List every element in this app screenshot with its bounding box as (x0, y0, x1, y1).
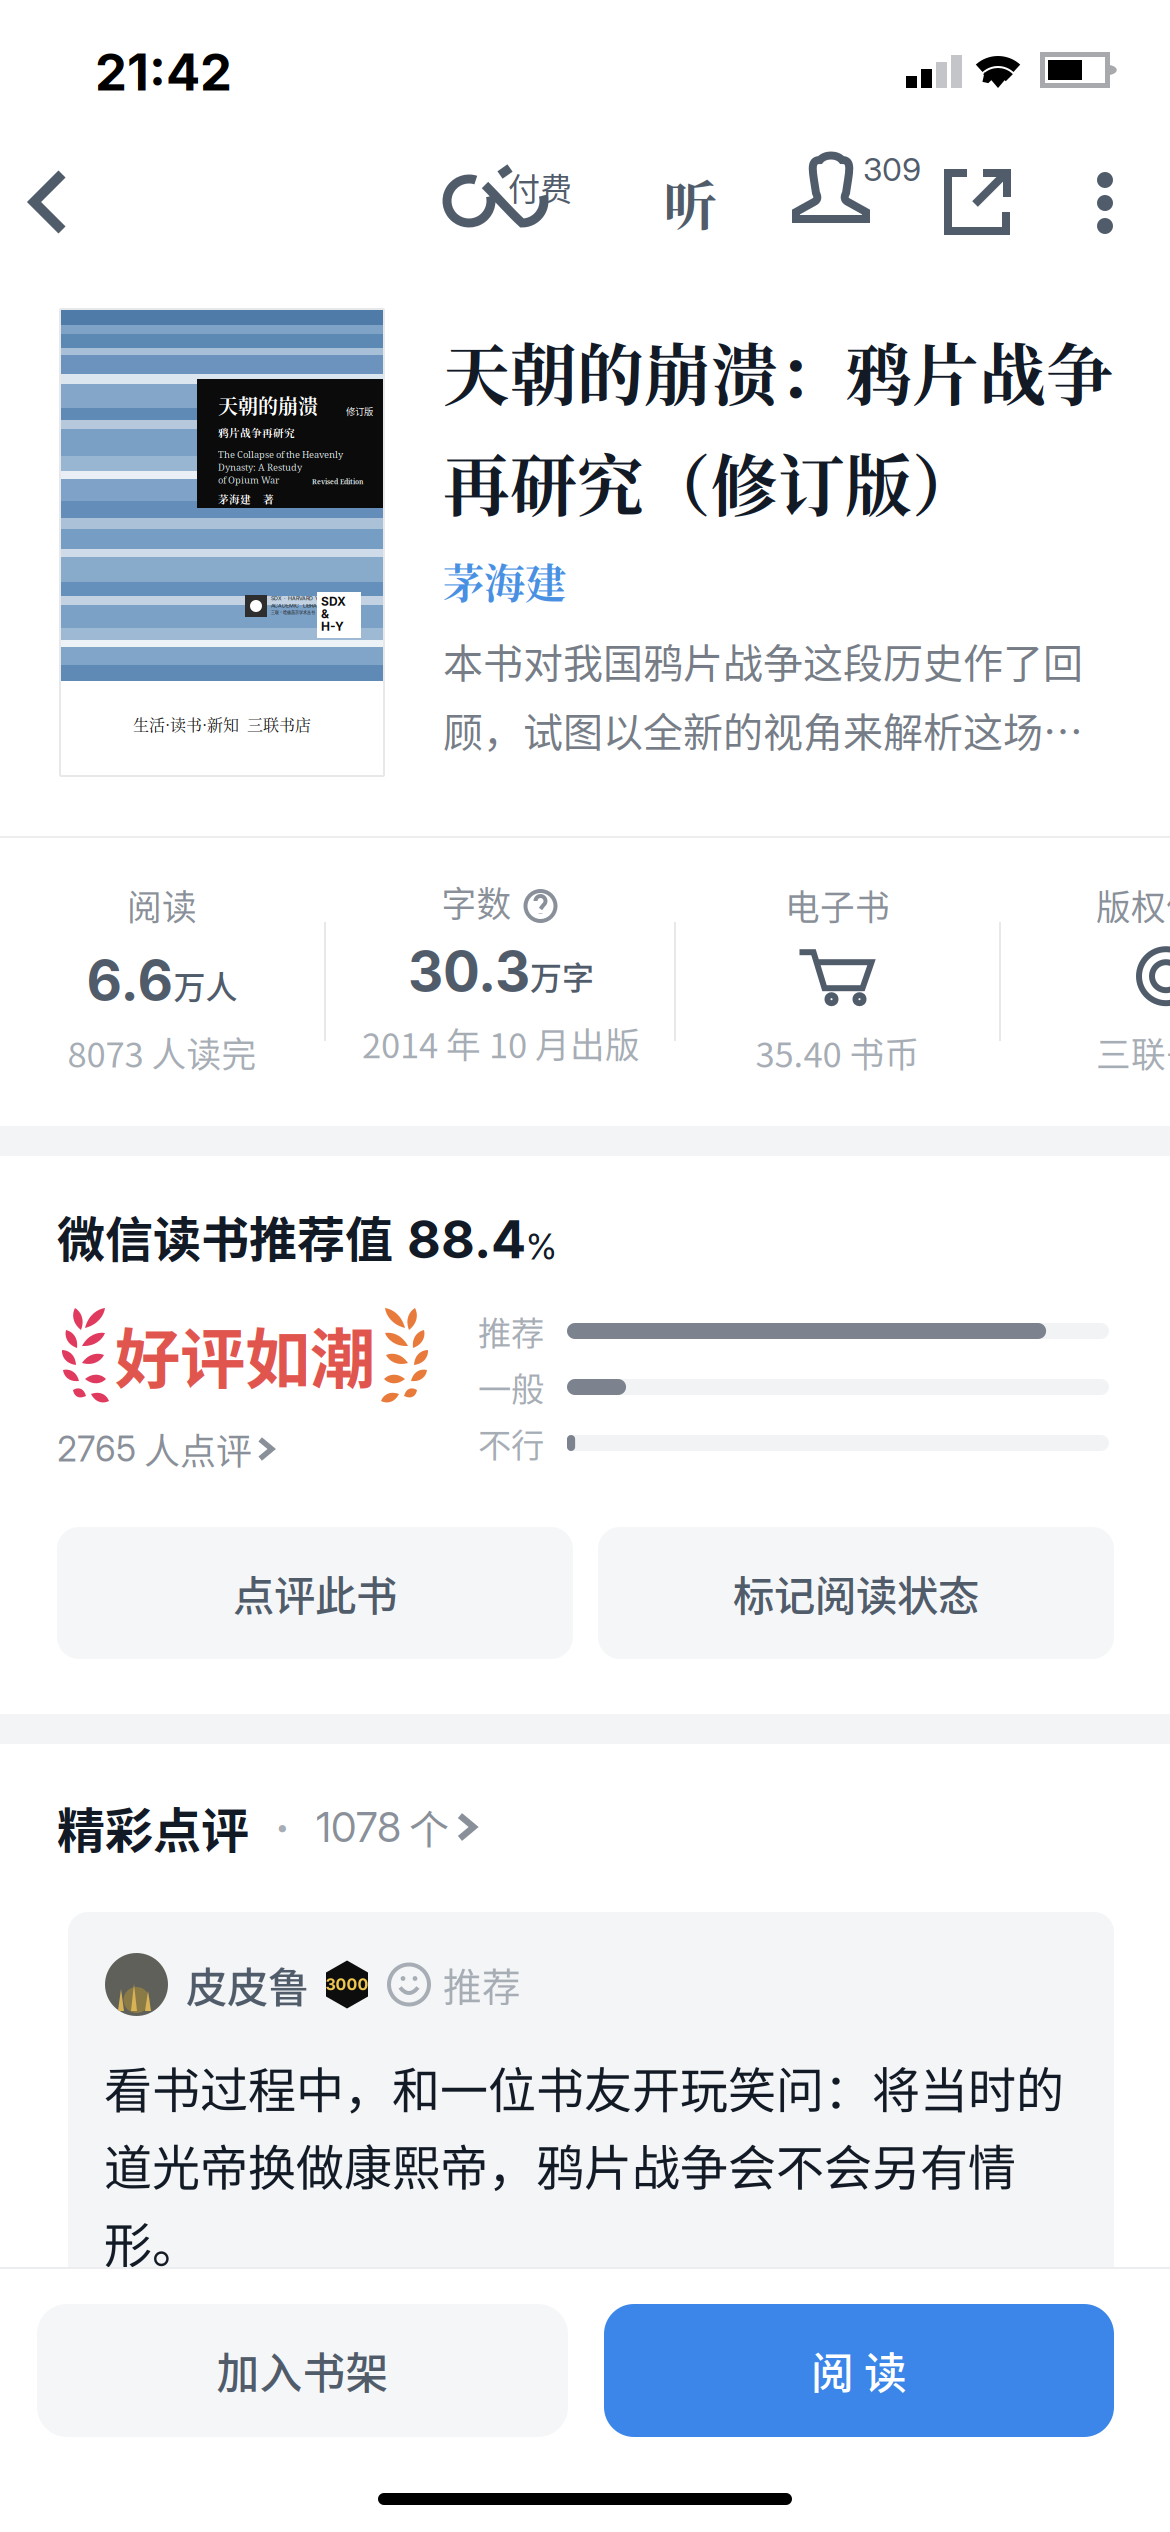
button[interactable]: 点评此书 (57, 1527, 573, 1659)
staticText: 看书过程中，和一位书友开玩笑问：将当时的 (104, 2052, 1064, 2121)
staticText: 人点评 (144, 1423, 252, 1475)
staticText: 电子书 (785, 880, 890, 930)
staticText: 2014 年 10 月出版 (362, 1018, 640, 1068)
staticText: 点评此书 (233, 1563, 397, 1623)
staticText: 88.4 (407, 1208, 526, 1271)
staticText: 35.40 书币 (755, 1027, 919, 1077)
staticText: 万人 (173, 962, 237, 1008)
button[interactable]: 好评如潮 (57, 1300, 457, 1498)
staticText: 天朝的崩溃 (218, 391, 318, 420)
staticText: 阅读 (127, 880, 197, 930)
staticText: 精彩点评 (57, 1792, 249, 1862)
staticText: 3000 (325, 1975, 368, 1994)
staticText: 21:42 (95, 41, 232, 103)
staticText: SDX · HARVARD YENCHING (271, 595, 343, 601)
staticText: 顾，试图以全新的视角来解析这场… (443, 700, 1083, 758)
staticText: 皮皮鲁 (186, 1955, 309, 2014)
staticText: 8073 人读完 (67, 1027, 256, 1077)
staticText: 加入书架 (216, 2340, 388, 2401)
button[interactable]: 听书 (635, 140, 745, 265)
staticText: 标记阅读状态 (733, 1563, 979, 1623)
staticText: 阅 读 (811, 2340, 907, 2401)
button[interactable]: 读者 309 (791, 140, 961, 265)
staticText: 天朝的崩溃：鸦片战争 (443, 323, 1113, 419)
staticText: 生活·读书·新知 三联书店 (133, 712, 311, 735)
button[interactable]: 精彩点评 (57, 1792, 617, 1862)
staticText: % (526, 1226, 557, 1268)
staticText: ACADEMIC LIBRARY (271, 602, 324, 609)
staticText: 6.6 (86, 947, 173, 1013)
staticText: 鸦片战争再研究 (218, 425, 295, 440)
staticText: 道光帝换做康熙帝，鸦片战争会不会另有情 (104, 2129, 1016, 2199)
staticText: 推荐 (478, 1307, 544, 1355)
staticText: 个 (409, 1798, 449, 1856)
button[interactable]: 付费 (444, 140, 604, 265)
staticText: & (321, 606, 329, 621)
staticText: Revised Edition (312, 477, 363, 486)
staticText: 2765 (57, 1428, 136, 1470)
button[interactable]: 阅 读 (604, 2304, 1114, 2437)
staticText: 茅海建 著 (218, 491, 274, 506)
staticText: 推荐 (443, 1956, 521, 2012)
staticText: 好评如潮 (115, 1307, 375, 1401)
staticText: The Collapse of the Heavenly (218, 448, 343, 461)
staticText: Dynasty: A Restudy (218, 461, 302, 473)
staticText: of Opium War (218, 473, 279, 486)
staticText: 三联书店 (1096, 1027, 1170, 1077)
button[interactable]: 更多 (1050, 140, 1160, 265)
button[interactable]: 返回 (0, 140, 118, 265)
staticText: 一般 (478, 1363, 544, 1411)
staticText: 微信读书推荐值 (57, 1201, 393, 1271)
staticText: 付费 (508, 164, 572, 210)
staticText: 茅海建 (443, 551, 566, 610)
button[interactable]: 标记阅读状态 (598, 1527, 1114, 1659)
staticText: 版权信息 (1096, 880, 1170, 930)
staticText: 三联·哈佛燕京学术丛书 (271, 610, 315, 616)
staticText: 听 (663, 164, 716, 241)
staticText: 再研究（修订版） (443, 434, 979, 530)
button[interactable]: 茅海建 (443, 552, 613, 610)
staticText: 万字 (530, 953, 594, 999)
staticText: 309 (863, 150, 921, 189)
staticText: 不行 (478, 1419, 544, 1467)
staticText: SDX (321, 594, 346, 608)
button[interactable]: 分享 (917, 140, 1037, 265)
staticText: 字数 (441, 877, 511, 927)
staticText: 30.3 (408, 938, 530, 1004)
staticText: 修订版 (346, 404, 373, 418)
staticText: 本书对我国鸦片战争这段历史作了回 (443, 632, 1083, 689)
button[interactable]: 加入书架 (37, 2304, 568, 2437)
staticText: · (265, 1802, 300, 1852)
staticText: 1078 (316, 1802, 401, 1852)
staticText: 形。 (104, 2207, 200, 2276)
staticText: H-Y (321, 619, 344, 633)
